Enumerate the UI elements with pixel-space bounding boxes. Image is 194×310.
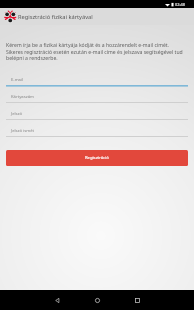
button[interactable]: Regisztráció [6,150,188,166]
button[interactable]: Recent apps [134,290,140,310]
staticText: Regisztráció [85,155,109,161]
staticText: E-mail [11,77,24,83]
staticText: Jelszó [11,111,23,117]
button[interactable]: Back [54,290,60,310]
staticText: Kártyaszám [11,94,34,100]
button[interactable]: Home [94,290,100,310]
staticText: 02:48 [175,2,185,7]
button[interactable]: E-mail [6,71,188,88]
staticText: Kérem írja be a fizikai kártyája kódját … [6,42,183,62]
staticText: Regisztráció fizikai kártyával [18,13,93,21]
button[interactable]: Jelszó ismét [6,122,188,139]
button[interactable]: Kártyaszám [6,88,188,105]
staticText: Jelszó ismét [11,128,35,134]
button[interactable]: Jelszó [6,105,188,122]
